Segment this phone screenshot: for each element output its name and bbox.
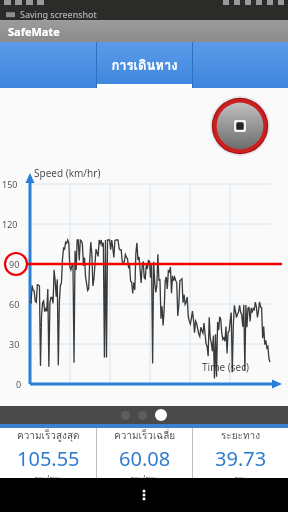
staticText: ความเร็วสูงสุด — [17, 428, 80, 444]
button[interactable] — [193, 42, 288, 88]
staticText: 60 — [9, 298, 20, 310]
staticText: ระยะทาง — [221, 428, 261, 444]
staticText: 0 — [16, 378, 22, 390]
staticText: 150 — [2, 178, 18, 190]
staticText: Time (sec) — [202, 360, 249, 374]
staticText: กม. — [234, 473, 247, 478]
staticText: SafeMate — [8, 24, 60, 39]
staticText: 120 — [2, 218, 18, 230]
button[interactable]: More options — [130, 481, 158, 509]
staticText: 60.08 — [119, 445, 171, 472]
staticText: ความเร็วเฉลี่ย — [114, 428, 176, 444]
staticText: Saving screenshot — [20, 8, 97, 20]
button[interactable]: ความเร็วสูงสุด — [0, 428, 96, 478]
button[interactable] — [138, 411, 147, 420]
staticText: กม./ชม. — [34, 473, 63, 478]
staticText: Speed (km/hr) — [34, 166, 101, 180]
staticText: 39.73 — [215, 445, 267, 472]
staticText: 30 — [9, 338, 20, 350]
staticText: 105.55 — [17, 445, 80, 472]
button[interactable]: Stop recording — [210, 96, 270, 156]
button[interactable] — [121, 411, 130, 420]
button[interactable]: การเดินทาง — [97, 42, 192, 88]
button[interactable] — [155, 409, 167, 421]
staticText: การเดินทาง — [111, 55, 178, 76]
staticText: กม./ชม. — [130, 473, 159, 478]
button[interactable]: ระยะทาง — [193, 428, 288, 478]
button[interactable]: ความเร็วเฉลี่ย — [97, 428, 192, 478]
staticText: 90 — [9, 258, 20, 270]
button[interactable] — [0, 42, 96, 88]
